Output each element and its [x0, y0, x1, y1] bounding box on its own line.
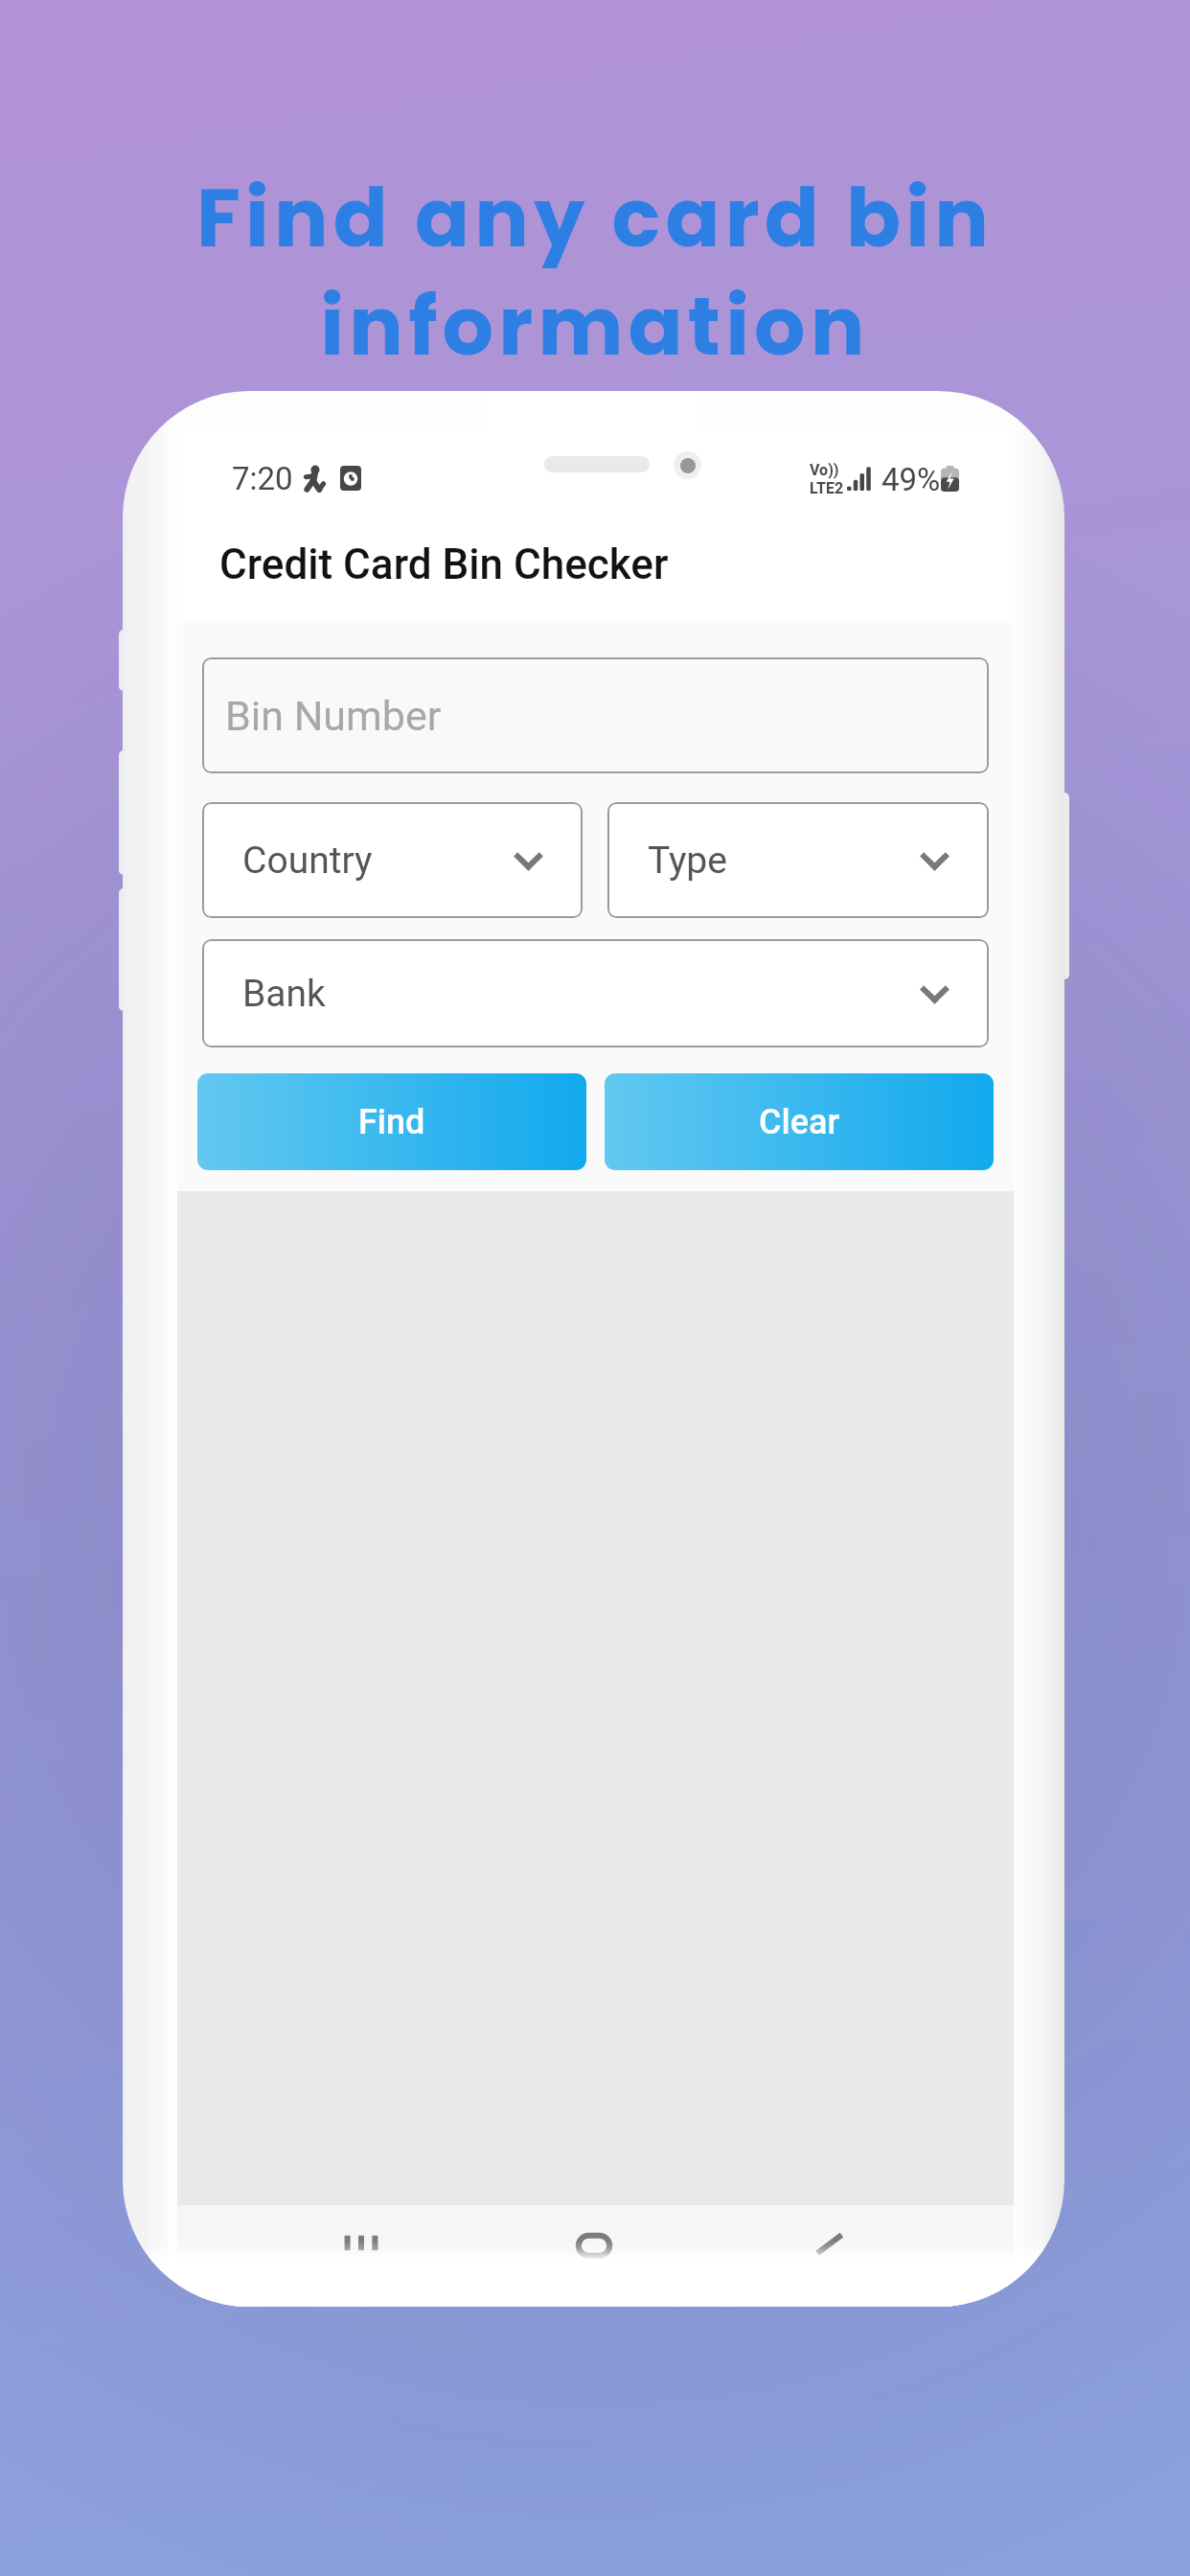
- staticText: 7:20: [232, 460, 293, 497]
- staticText: Type: [648, 839, 727, 883]
- staticText: Find any card bin information: [0, 162, 1190, 382]
- button[interactable]: Bank: [202, 939, 989, 1047]
- staticText: Clear: [759, 1102, 840, 1142]
- staticText: Bank: [242, 972, 326, 1016]
- button[interactable]: Country: [202, 802, 583, 918]
- staticText: LTE2: [810, 479, 844, 497]
- staticText: Credit Card Bin Checker: [219, 540, 669, 589]
- button[interactable]: Recents: [332, 2234, 390, 2261]
- staticText: Bin Number: [225, 692, 442, 740]
- staticText: 49%: [881, 461, 941, 498]
- button[interactable]: Type: [607, 802, 989, 918]
- button[interactable]: Clear: [605, 1073, 994, 1170]
- button[interactable]: Back: [805, 2234, 862, 2261]
- button[interactable]: Find: [197, 1073, 586, 1170]
- staticText: Vo)): [810, 461, 839, 479]
- button[interactable]: Bin Number: [202, 657, 989, 773]
- staticText: Find: [358, 1102, 425, 1142]
- button[interactable]: Home: [565, 2234, 623, 2261]
- staticText: Country: [242, 839, 373, 883]
